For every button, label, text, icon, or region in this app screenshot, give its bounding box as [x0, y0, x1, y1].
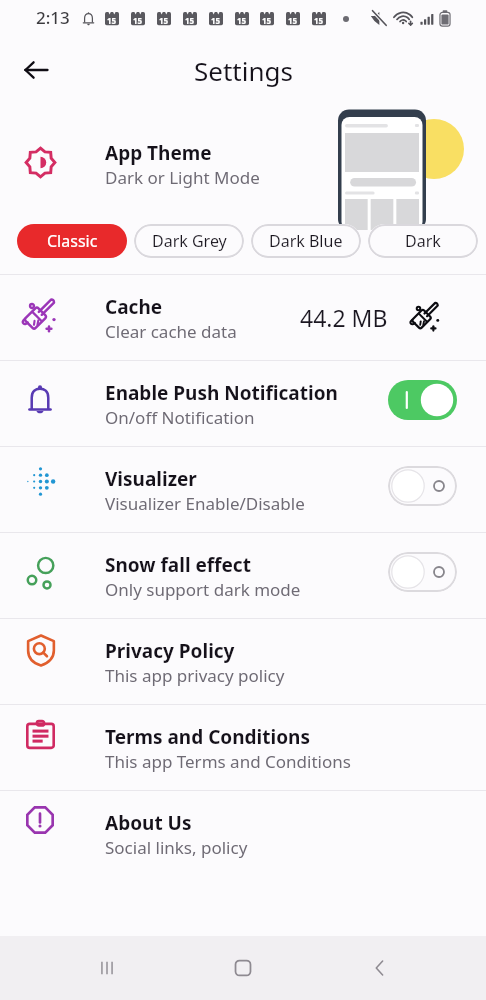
staticText: 15	[133, 15, 143, 26]
button[interactable]: Switch on	[388, 380, 457, 420]
staticText: Dark	[405, 230, 441, 252]
staticText: Dark Grey	[152, 230, 227, 252]
staticText: 15	[185, 15, 195, 26]
button[interactable]: Terms and Conditions	[0, 705, 486, 790]
staticText: Privacy Policy	[105, 638, 235, 664]
staticText: About Us	[105, 810, 192, 836]
staticText: On/off Notification	[105, 406, 255, 429]
staticText: 44.2 MB	[300, 302, 388, 333]
button[interactable]: Switch off	[388, 466, 457, 506]
staticText: Terms and Conditions	[105, 724, 310, 750]
staticText: 2:13	[36, 6, 70, 29]
button[interactable]: Dark	[368, 224, 478, 258]
button[interactable]: Recent apps	[77, 938, 137, 998]
button[interactable]: Snow fall effect	[0, 533, 486, 618]
staticText: Social links, policy	[105, 836, 248, 859]
button[interactable]: Back	[12, 46, 60, 94]
staticText: 15	[314, 15, 324, 26]
button[interactable]: Home	[213, 938, 273, 998]
button[interactable]: Cache	[0, 275, 486, 360]
button[interactable]: Visualizer	[0, 447, 486, 532]
staticText: This app Terms and Conditions	[105, 750, 351, 773]
button[interactable]: Classic	[17, 224, 127, 258]
button[interactable]: Dark Blue	[251, 224, 361, 258]
button[interactable]: Switch off	[388, 552, 457, 592]
staticText: Settings	[194, 53, 293, 88]
staticText: Dark Blue	[269, 230, 343, 252]
staticText: Enable Push Notification	[105, 380, 338, 406]
button[interactable]: Privacy Policy	[0, 619, 486, 704]
staticText: Classic	[47, 230, 98, 252]
staticText: 15	[107, 15, 117, 26]
staticText: Visualizer	[105, 466, 197, 492]
staticText: Clear cache data	[105, 320, 237, 343]
staticText: App Theme	[105, 140, 212, 166]
staticText: Dark or Light Mode	[105, 166, 260, 189]
button[interactable]: Enable Push Notification	[0, 361, 486, 446]
staticText: 15	[211, 15, 221, 26]
button[interactable]: Dark Grey	[134, 224, 244, 258]
staticText: Only support dark mode	[105, 578, 301, 601]
button[interactable]: Back	[350, 938, 410, 998]
staticText: Cache	[105, 294, 163, 320]
staticText: 15	[288, 15, 298, 26]
staticText: Snow fall effect	[105, 552, 251, 578]
staticText: 15	[237, 15, 247, 26]
staticText: This app privacy policy	[105, 664, 285, 687]
button[interactable]: About Us	[0, 791, 486, 876]
staticText: Visualizer Enable/Disable	[105, 492, 305, 515]
staticText: 15	[159, 15, 169, 26]
staticText: 15	[262, 15, 272, 26]
